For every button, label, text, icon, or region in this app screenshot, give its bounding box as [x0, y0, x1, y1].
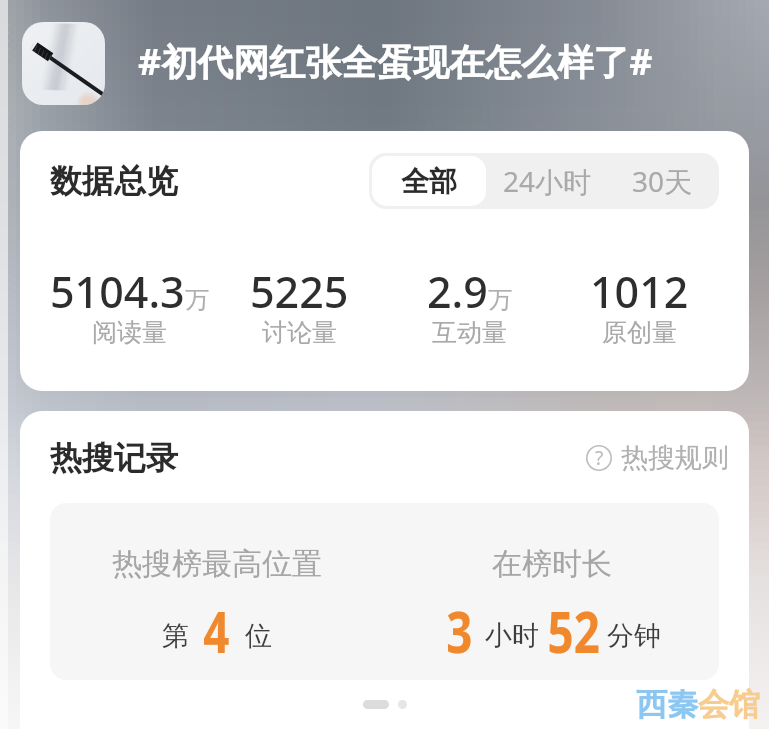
button[interactable]: 全部: [372, 156, 486, 206]
staticText: 30天: [632, 162, 693, 200]
staticText: 3: [446, 592, 473, 670]
staticText: 52: [548, 592, 600, 670]
staticText: 会馆: [698, 685, 760, 724]
staticText: #初代网红张全蛋现在怎么样了#: [138, 37, 653, 86]
button[interactable]: 30天: [608, 156, 716, 206]
staticText: 热搜榜最高位置: [112, 545, 322, 583]
staticText: 第: [162, 619, 189, 653]
staticText: 互动量: [432, 317, 507, 348]
staticText: 5225: [250, 262, 349, 321]
staticText: 阅读量: [92, 317, 167, 348]
button[interactable]: ?: [586, 441, 729, 475]
staticText: 24小时: [503, 162, 592, 200]
staticText: 热搜记录: [50, 438, 178, 478]
staticText: 全部: [401, 164, 457, 199]
staticText: 西秦: [636, 685, 698, 724]
staticText: 讨论量: [262, 317, 337, 348]
staticText: ?: [595, 445, 604, 471]
staticText: 热搜规则: [621, 441, 729, 475]
staticText: 4: [203, 592, 230, 670]
staticText: 5104.3: [50, 262, 185, 321]
button[interactable]: 24小时: [486, 156, 608, 206]
staticText: 数据总览: [50, 161, 178, 201]
staticText: 在榜时长: [492, 545, 612, 583]
staticText: 分钟: [607, 619, 661, 653]
staticText: 原创量: [602, 317, 677, 348]
staticText: 万: [185, 285, 209, 315]
staticText: 位: [245, 619, 272, 653]
staticText: 小时: [485, 619, 539, 653]
staticText: 万: [488, 285, 512, 315]
staticText: 2.9: [427, 262, 488, 321]
button[interactable]: 话题封面: [22, 22, 105, 105]
staticText: 1012: [590, 262, 689, 321]
